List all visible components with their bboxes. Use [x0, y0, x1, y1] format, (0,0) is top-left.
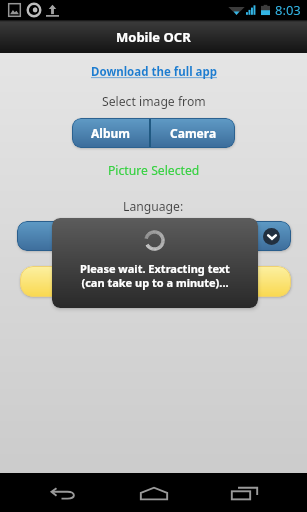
staticText: 8:03	[275, 1, 301, 19]
button[interactable]: Album	[72, 118, 149, 148]
staticText: Mobile OCR	[116, 28, 191, 46]
staticText: Download the full app	[91, 64, 217, 80]
staticText: Camera	[170, 125, 217, 141]
button[interactable]: Download the full app	[87, 62, 221, 82]
button[interactable]: Camera	[151, 118, 235, 148]
staticText: Select image from	[102, 93, 206, 110]
staticText: Language:	[123, 198, 184, 215]
button[interactable]	[20, 266, 291, 297]
staticText: Picture Selected	[108, 162, 200, 179]
button[interactable]: Recent apps	[221, 477, 267, 509]
button[interactable]	[17, 221, 291, 251]
staticText: Please wait. Extracting text (can take u…	[80, 261, 230, 290]
button[interactable]: Home	[131, 477, 177, 509]
button[interactable]: Back	[40, 477, 86, 509]
staticText: Album	[91, 125, 130, 141]
